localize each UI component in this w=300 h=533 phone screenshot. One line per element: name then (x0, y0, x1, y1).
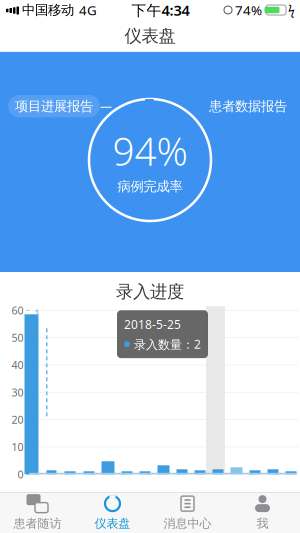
staticText: 消息中心 (163, 516, 211, 531)
staticText: ϟ (288, 2, 295, 18)
staticText: 病例完成率 (117, 178, 182, 195)
staticText: 我 (256, 516, 268, 531)
staticText: 患者随访 (13, 516, 61, 531)
button[interactable]: 我 (225, 492, 300, 533)
staticText: 中国移动 (22, 2, 74, 18)
staticText: 录入进度 (116, 281, 184, 302)
staticText: 20 (11, 412, 23, 427)
button[interactable]: 消息中心 (150, 492, 225, 533)
staticText: 仪表盘 (94, 516, 130, 531)
staticText: 2018-5-25 (124, 316, 181, 332)
staticText: 50 (11, 330, 23, 345)
staticText: 0 (17, 467, 23, 481)
staticText: 录入数量：2 (134, 336, 201, 352)
staticText: 74% (235, 1, 262, 19)
staticText: 30 (11, 385, 23, 399)
staticText: 仪表盘 (124, 25, 175, 47)
staticText: 10 (11, 440, 23, 454)
staticText: 94% (112, 125, 187, 176)
staticText: 下午4:34 (131, 0, 189, 20)
staticText: 1 (34, 306, 40, 320)
button[interactable]: 患者随访 (0, 492, 75, 533)
staticText: 60 (11, 303, 23, 317)
button[interactable]: 仪表盘 (75, 492, 150, 533)
staticText: — (100, 98, 112, 114)
staticText: 40 (11, 358, 23, 372)
staticText: 项目进展报告 (15, 98, 93, 114)
staticText: 4G (79, 1, 97, 19)
staticText: 患者数据报告 (209, 98, 287, 114)
